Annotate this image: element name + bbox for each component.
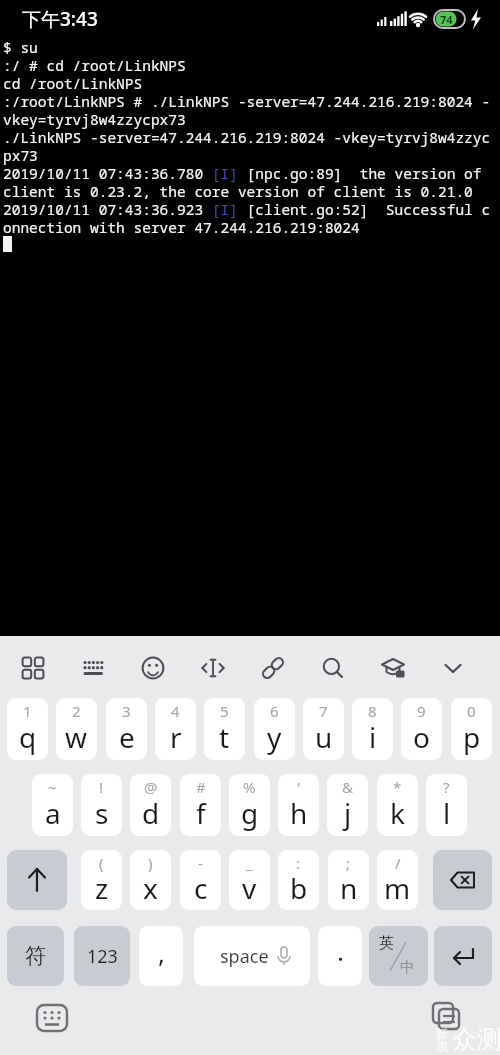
button[interactable]: 2	[56, 698, 97, 760]
staticText: d	[142, 794, 160, 832]
staticText: !	[99, 777, 104, 797]
staticText: 8	[368, 701, 377, 721]
staticText: 7	[319, 701, 328, 721]
staticText: -	[198, 853, 203, 873]
staticText: c	[194, 869, 208, 907]
button[interactable]: '	[278, 774, 319, 836]
staticText: .	[337, 933, 344, 968]
staticText: 2019/10/11 07:43:36.923 [I] [client.go:5…	[3, 199, 491, 219]
button[interactable]: *	[377, 774, 418, 836]
staticText: ~	[48, 777, 57, 797]
staticText: 5	[220, 701, 229, 721]
button[interactable]: 9	[401, 698, 442, 760]
button[interactable]: 0	[451, 698, 492, 760]
button[interactable]	[138, 653, 168, 683]
staticText: l	[443, 794, 451, 832]
button[interactable]	[33, 1001, 71, 1037]
button[interactable]: 3	[106, 698, 147, 760]
staticText: v	[242, 869, 257, 907]
button[interactable]: (	[81, 850, 122, 910]
button[interactable]	[378, 653, 408, 683]
staticText: a	[45, 794, 61, 832]
button[interactable]: ?	[426, 774, 467, 836]
staticText: u	[315, 718, 333, 756]
staticText: w	[65, 718, 88, 756]
button[interactable]	[78, 653, 108, 683]
staticText: h	[290, 794, 308, 832]
staticText: k	[390, 794, 405, 832]
staticText: 0	[467, 701, 476, 721]
button[interactable]	[18, 653, 48, 683]
staticText: 123	[87, 944, 118, 969]
button[interactable]: 英	[369, 926, 428, 986]
staticText: _	[246, 853, 253, 873]
button[interactable]	[198, 653, 228, 683]
button[interactable]: #	[180, 774, 221, 836]
staticText: /	[395, 853, 401, 873]
button[interactable]	[434, 926, 492, 986]
button[interactable]: 5	[204, 698, 245, 760]
button[interactable]	[258, 653, 288, 683]
staticText: g	[241, 794, 259, 832]
staticText: o	[413, 718, 430, 756]
staticText: r	[170, 718, 182, 756]
button[interactable]	[318, 653, 348, 683]
staticText: 6	[270, 701, 279, 721]
staticText: space	[220, 944, 269, 969]
button[interactable]: %	[229, 774, 270, 836]
staticText: b	[290, 869, 308, 907]
button[interactable]: ,	[139, 926, 183, 986]
staticText: $ su	[3, 37, 38, 57]
staticText: @	[144, 777, 158, 797]
staticText: %	[243, 777, 256, 797]
staticText: z	[95, 869, 109, 907]
button[interactable]: 123	[74, 926, 130, 986]
button[interactable]: 6	[254, 698, 295, 760]
staticText: t	[219, 718, 230, 756]
button[interactable]: 符	[7, 926, 64, 986]
staticText: 众测	[452, 1024, 500, 1055]
staticText: f	[196, 794, 206, 832]
staticText: px73	[3, 145, 38, 165]
staticText: cd /root/LinkNPS	[3, 73, 143, 93]
button[interactable]	[7, 850, 67, 910]
button[interactable]	[438, 653, 468, 683]
staticText: i	[369, 718, 377, 756]
button[interactable]: 7	[303, 698, 344, 760]
button[interactable]: ;	[328, 850, 369, 910]
button[interactable]	[428, 998, 468, 1038]
staticText: :/ # cd /root/LinkNPS	[3, 55, 186, 75]
staticText: n	[340, 869, 358, 907]
button[interactable]	[433, 850, 492, 910]
staticText: j	[344, 794, 352, 832]
button[interactable]: !	[81, 774, 122, 836]
button[interactable]: @	[130, 774, 171, 836]
button[interactable]: :	[278, 850, 319, 910]
button[interactable]: .	[318, 926, 362, 986]
staticText: vkey=tyrvj8w4zzycpx73	[3, 109, 186, 129]
staticText: 2019/10/11 07:43:36.780 [I] [npc.go:89] …	[3, 163, 482, 183]
button[interactable]: &	[327, 774, 368, 836]
button[interactable]: -	[180, 850, 221, 910]
button[interactable]: 8	[352, 698, 393, 760]
button[interactable]: 1	[7, 698, 48, 760]
staticText: onnection with server 47.244.216.219:802…	[3, 217, 360, 237]
button[interactable]: )	[130, 850, 171, 910]
button[interactable]: _	[229, 850, 270, 910]
staticText: 英	[379, 934, 394, 953]
staticText: ;	[346, 853, 351, 873]
button[interactable]: 4	[155, 698, 196, 760]
staticText: ./LinkNPS -server=47.244.216.219:8024 -v…	[3, 127, 491, 147]
staticText: (	[99, 853, 104, 873]
staticText: 新 浪	[436, 1026, 448, 1054]
staticText: #	[196, 777, 206, 797]
staticText: )	[148, 853, 153, 873]
button[interactable]: /	[377, 850, 418, 910]
staticText: 9	[417, 701, 426, 721]
staticText: 3	[122, 701, 131, 721]
staticText: e	[119, 718, 135, 756]
staticText: x	[143, 869, 158, 907]
button[interactable]: space	[194, 926, 310, 986]
staticText: client is 0.23.2, the core version of cl…	[3, 181, 473, 201]
button[interactable]: ~	[32, 774, 73, 836]
